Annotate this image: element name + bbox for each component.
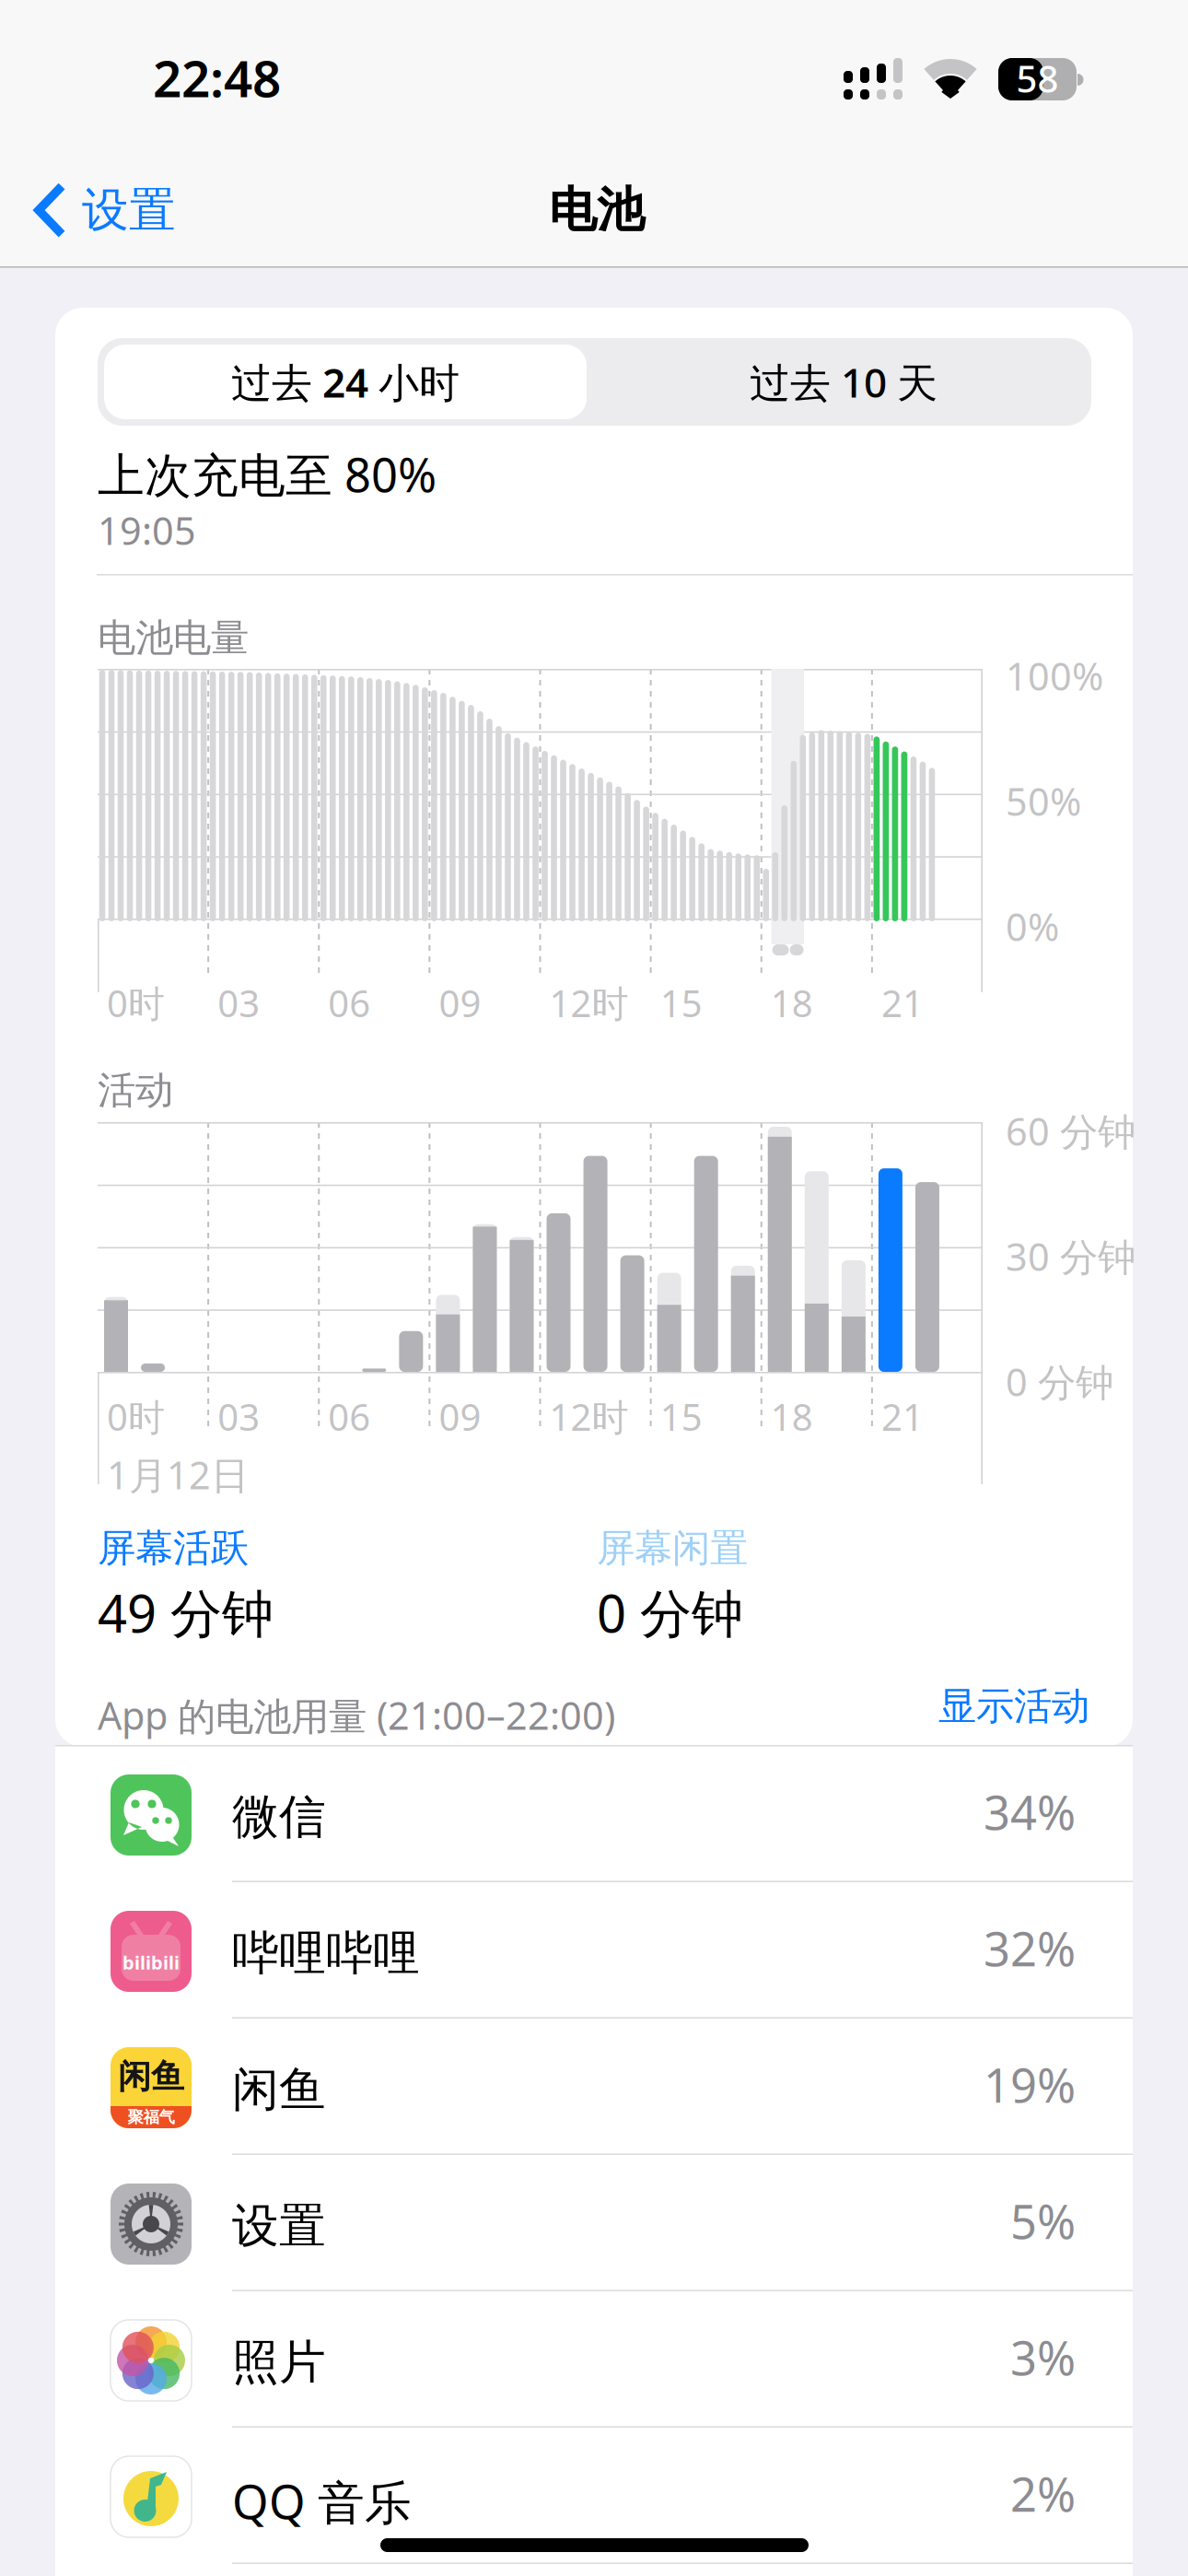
staticText: 屏幕闲置	[597, 1525, 748, 1572]
staticText: 32%	[984, 1917, 1076, 1979]
staticText: 上次充电至 80%	[98, 443, 437, 505]
staticText: 15	[660, 1392, 702, 1441]
staticText: 1月12日	[107, 1449, 249, 1500]
staticText: 19:05	[98, 505, 196, 555]
staticText: 15	[660, 978, 702, 1027]
staticText: App 的电池用量 (21:00–22:00)	[98, 1690, 615, 1740]
staticText: 19%	[984, 2054, 1076, 2116]
staticText: 闲鱼	[118, 2056, 184, 2097]
staticText: 60 分钟	[1006, 1106, 1136, 1156]
staticText: 哔哩哔哩	[232, 1925, 420, 1982]
staticText: 12时	[549, 978, 629, 1027]
staticText: 0 分钟	[1006, 1356, 1113, 1407]
staticText: 21	[881, 978, 924, 1027]
staticText: 设置	[82, 181, 176, 239]
staticText: 0 分钟	[597, 1578, 743, 1647]
staticText: 闲鱼	[232, 2061, 326, 2118]
button[interactable]: 过去 10 天	[602, 345, 1085, 419]
staticText: 30 分钟	[1006, 1231, 1136, 1281]
staticText: 过去 10 天	[750, 355, 938, 409]
button[interactable]: 闲鱼	[55, 2019, 1133, 2155]
staticText: 06	[328, 978, 370, 1027]
staticText: 18	[771, 978, 813, 1027]
staticText: 49 分钟	[98, 1578, 274, 1647]
staticText: 0时	[107, 1392, 165, 1441]
staticText: 0%	[1006, 901, 1059, 952]
staticText: 5%	[1010, 2190, 1076, 2252]
staticText: 09	[439, 1392, 481, 1441]
button[interactable]: 设置	[26, 172, 183, 248]
staticText: 22:48	[153, 44, 281, 111]
staticText: 03	[217, 978, 260, 1027]
button[interactable]: 过去 24 小时	[104, 345, 587, 419]
staticText: 03	[217, 1392, 260, 1441]
staticText: 21	[881, 1392, 924, 1441]
staticText: 50%	[1006, 776, 1081, 826]
staticText: 微信	[232, 1788, 326, 1846]
staticText: 电池电量	[98, 615, 249, 661]
button[interactable]: QQ 音乐	[55, 2428, 1133, 2564]
staticText: 照片	[232, 2334, 326, 2391]
button[interactable]: 微信	[55, 1746, 1133, 1882]
staticText: 3%	[1010, 2326, 1076, 2388]
button[interactable]: 显示活动	[0, 1680, 1089, 1732]
staticText: 设置	[232, 2197, 326, 2255]
staticText: 34%	[984, 1781, 1076, 1843]
staticText: 09	[439, 978, 481, 1027]
staticText: QQ 音乐	[232, 2470, 412, 2532]
staticText: 100%	[1006, 650, 1103, 701]
staticText: 12时	[549, 1392, 629, 1441]
staticText: 活动	[98, 1067, 173, 1114]
button[interactable]: 照片	[55, 2291, 1133, 2428]
button[interactable]: bilibili	[55, 1882, 1133, 2019]
staticText: bilibili	[122, 1950, 180, 1975]
button[interactable]: 设置	[55, 2155, 1133, 2291]
staticText: 0时	[107, 978, 165, 1027]
staticText: 2%	[1010, 2463, 1076, 2525]
staticText: 06	[328, 1392, 370, 1441]
staticText: 电池	[549, 181, 645, 239]
staticText: 显示活动	[938, 1683, 1089, 1730]
staticText: 18	[771, 1392, 813, 1441]
staticText: 聚福气	[128, 2107, 175, 2127]
staticText: 58	[1016, 54, 1059, 103]
staticText: 屏幕活跃	[98, 1525, 249, 1572]
staticText: 过去 24 小时	[231, 355, 460, 409]
